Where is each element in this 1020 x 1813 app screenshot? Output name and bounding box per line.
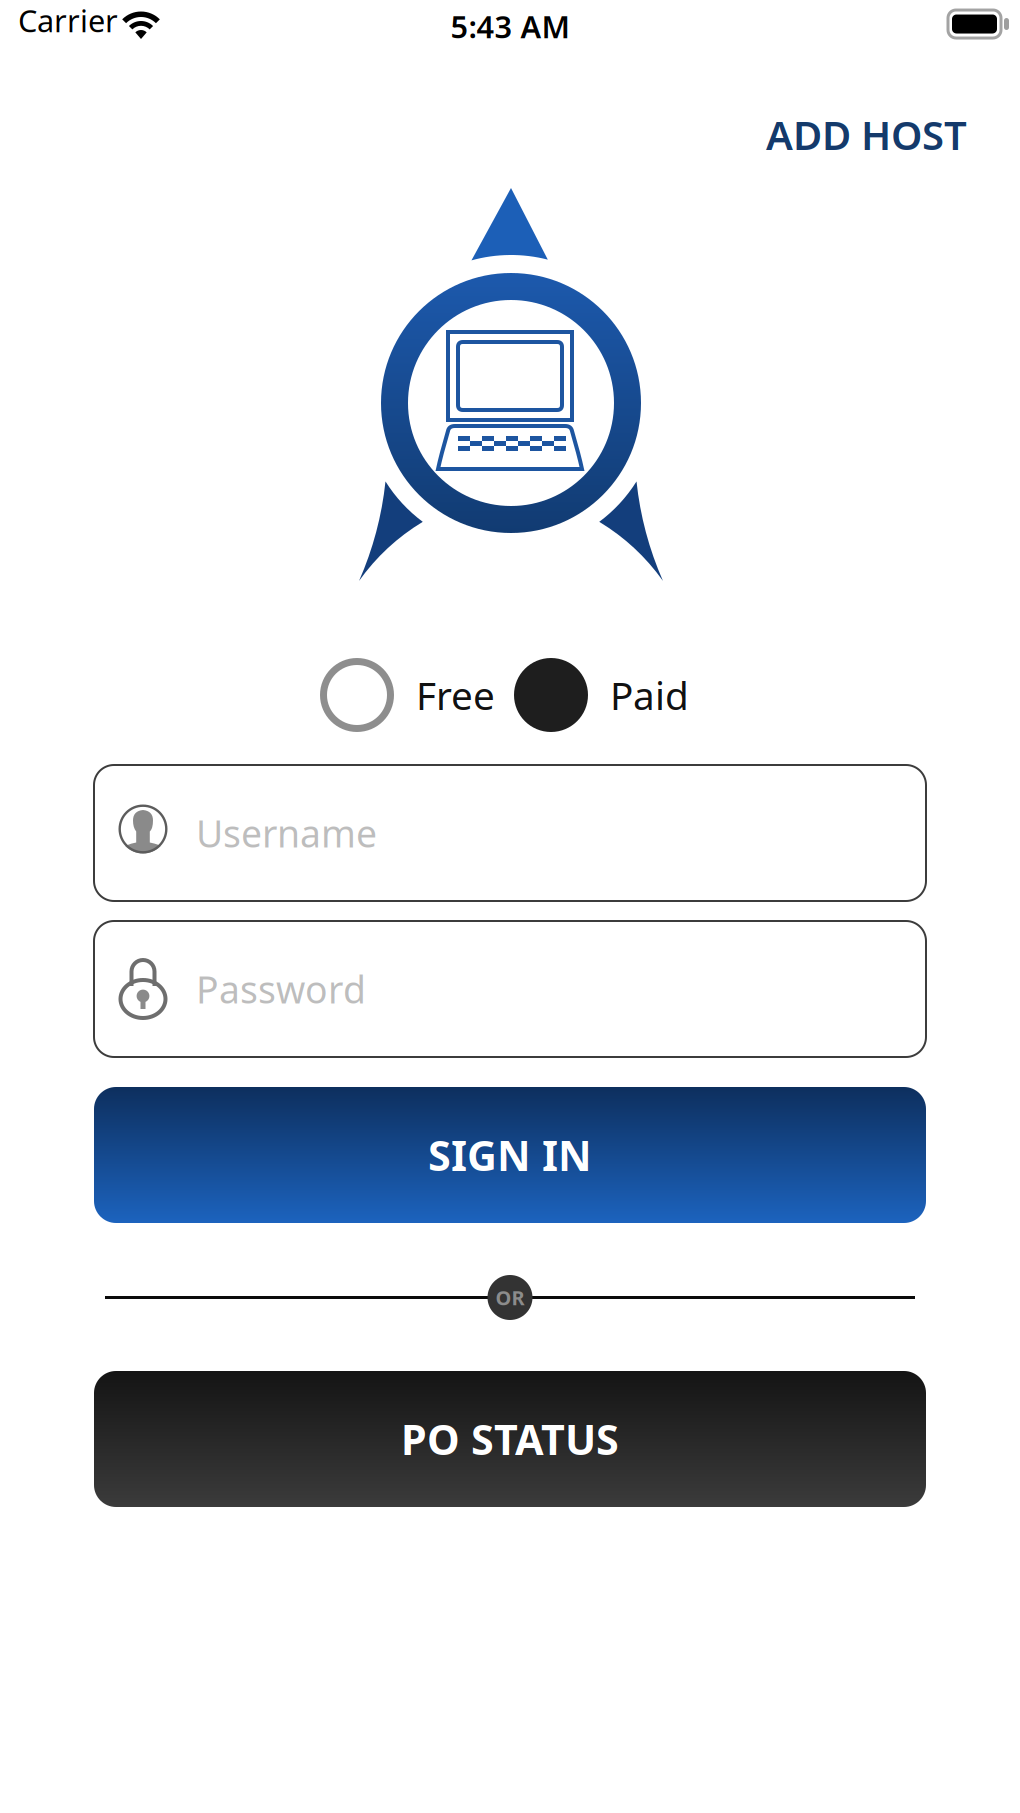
button[interactable]: PO STATUS (94, 1371, 926, 1507)
button[interactable]: ADD HOST (750, 94, 983, 175)
button[interactable]: Free (320, 658, 495, 732)
staticText: PO STATUS (401, 1412, 619, 1466)
button[interactable]: SIGN IN (94, 1087, 926, 1223)
staticText: Password (196, 964, 366, 1014)
staticText: ADD HOST (766, 108, 967, 161)
staticText: SIGN IN (428, 1128, 592, 1182)
staticText: Paid (610, 669, 689, 721)
staticText: OR (495, 1284, 524, 1311)
staticText: Carrier (18, 0, 118, 41)
staticText: 5:43 AM (450, 6, 569, 47)
staticText: Username (196, 808, 377, 858)
button[interactable]: Paid (495, 658, 689, 732)
staticText: Free (416, 669, 495, 721)
